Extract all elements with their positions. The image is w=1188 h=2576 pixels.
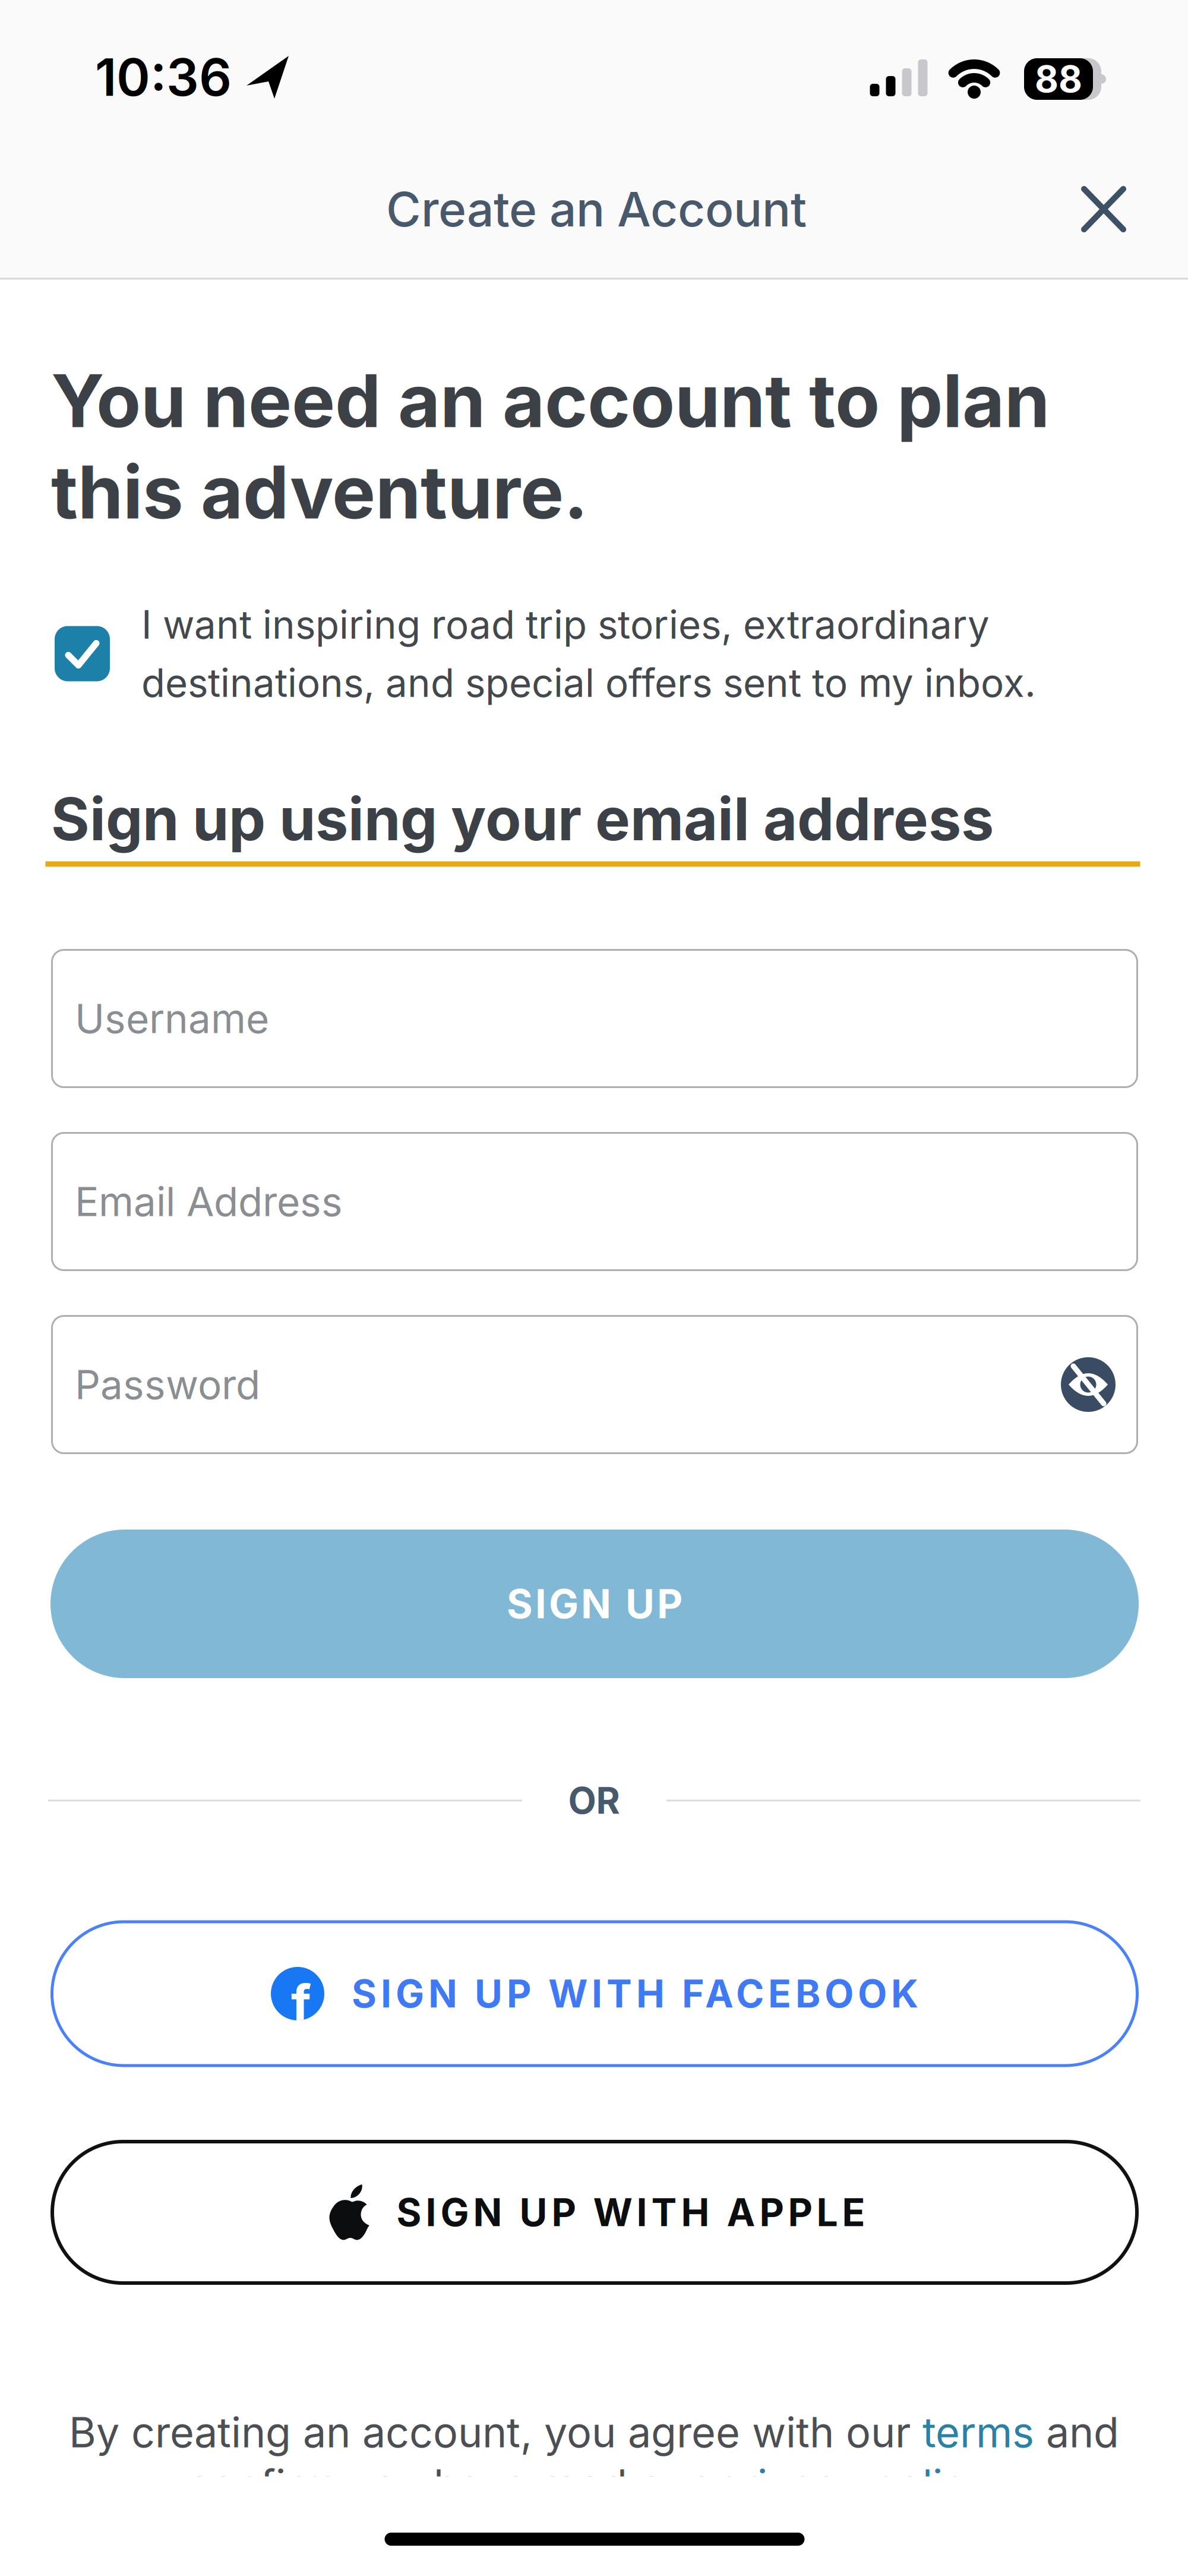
button[interactable] (1081, 186, 1126, 232)
staticText: I want inspiring road trip stories, extr… (141, 602, 990, 647)
staticText: this adventure. (51, 449, 588, 535)
button[interactable]: Password (51, 1315, 1138, 1454)
button[interactable]: Username (51, 949, 1138, 1088)
staticText: and (1034, 2408, 1119, 2457)
staticText: destinations, and special offers sent to… (141, 660, 1036, 706)
staticText: SIGN UP WITH APPLE (396, 2190, 865, 2235)
staticText: By creating an account, you agree with o… (69, 2408, 922, 2457)
staticText: Create an Account (386, 181, 807, 237)
button[interactable]: SIGN UP WITH APPLE (50, 2140, 1139, 2285)
staticText: SIGN UP WITH FACEBOOK (352, 1971, 918, 2016)
button[interactable]: f (50, 1920, 1139, 2067)
button[interactable]: privacy policy (716, 2460, 989, 2509)
staticText: Sign up using your email address (51, 784, 994, 853)
button[interactable]: terms (922, 2408, 1034, 2457)
button[interactable]: I want inspiring road trip stories, extr… (55, 602, 1142, 706)
staticText: SIGN UP (507, 1580, 683, 1627)
staticText: terms (922, 2408, 1034, 2457)
staticText: 10:36 (95, 47, 232, 107)
staticText: Email Address (75, 1178, 343, 1225)
staticText: f (291, 1973, 311, 2033)
staticText: 88 (1035, 58, 1082, 101)
staticText: privacy policy (716, 2460, 989, 2509)
staticText: Password (75, 1361, 260, 1408)
button[interactable]: SIGN UP (50, 1530, 1139, 1678)
staticText: Username (75, 995, 269, 1042)
button[interactable]: Email Address (51, 1132, 1138, 1271)
staticText: You need an account to plan (51, 358, 1050, 444)
staticText: OR (568, 1779, 620, 1822)
staticText: confirm you have read our (187, 2460, 716, 2509)
button[interactable] (1061, 1357, 1116, 1412)
